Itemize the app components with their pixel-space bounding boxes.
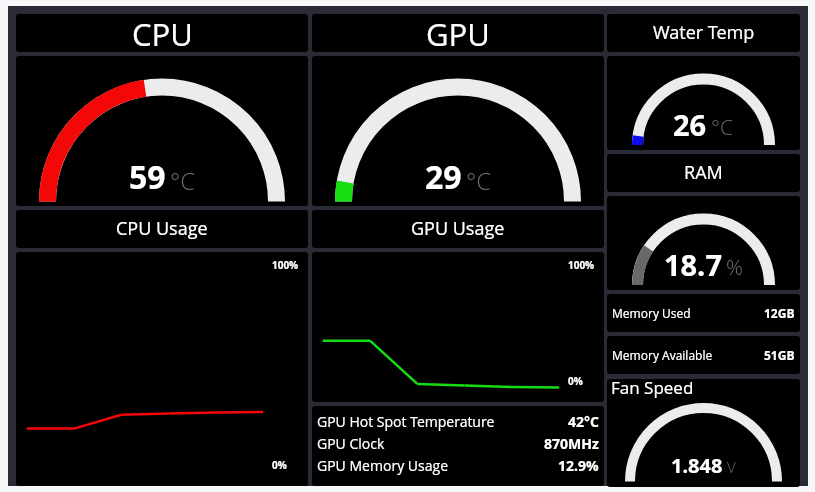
staticText: % [726, 253, 743, 282]
staticText: 1.848 [671, 452, 723, 479]
button[interactable]: Memory Used [607, 294, 800, 332]
button[interactable]: Water Temp [607, 14, 800, 52]
staticText: GPU [426, 14, 490, 51]
staticText: 59 [129, 155, 166, 199]
staticText: Memory Used [612, 305, 691, 321]
staticText: GPU Hot Spot Temperature [317, 412, 495, 431]
button[interactable]: CPU Usage [16, 210, 308, 248]
button[interactable]: Memory Available [607, 336, 800, 374]
button[interactable]: 26 [607, 56, 800, 150]
staticText: °C [466, 164, 492, 197]
staticText: 0% [568, 374, 583, 388]
button[interactable]: 29 [312, 56, 604, 206]
button[interactable]: 100% [312, 252, 604, 402]
staticText: V [727, 457, 736, 477]
staticText: 100% [568, 258, 595, 272]
staticText: RAM [684, 160, 723, 185]
button[interactable]: 18.7 [607, 196, 800, 290]
button[interactable]: CPU [16, 14, 308, 52]
staticText: GPU Memory Usage [317, 456, 449, 475]
staticText: 100% [272, 258, 299, 272]
staticText: GPU Clock [317, 434, 385, 453]
staticText: 0% [272, 458, 287, 472]
staticText: CPU Usage [116, 216, 208, 241]
button[interactable]: RAM [607, 154, 800, 192]
button[interactable]: 59 [16, 56, 308, 206]
button[interactable]: 100% [16, 252, 308, 486]
staticText: °C [711, 113, 734, 142]
staticText: °C [170, 164, 196, 197]
staticText: 26 [673, 105, 707, 144]
button[interactable]: Fan Speed [607, 379, 800, 487]
button[interactable]: GPU [312, 14, 604, 52]
staticText: 51GB [764, 347, 795, 363]
staticText: Memory Available [612, 347, 713, 363]
button[interactable]: GPU Hot Spot Temperature [312, 406, 604, 486]
staticText: 12GB [764, 305, 795, 321]
staticText: 42°C [568, 412, 599, 431]
staticText: CPU [132, 14, 193, 51]
staticText: 870MHz [544, 434, 599, 453]
staticText: GPU Usage [411, 216, 505, 241]
staticText: Water Temp [653, 20, 755, 45]
button[interactable]: GPU Usage [312, 210, 604, 248]
staticText: 29 [425, 155, 462, 199]
staticText: 12.9% [558, 456, 599, 475]
staticText: 18.7 [664, 245, 722, 284]
staticText: Fan Speed [611, 379, 694, 399]
